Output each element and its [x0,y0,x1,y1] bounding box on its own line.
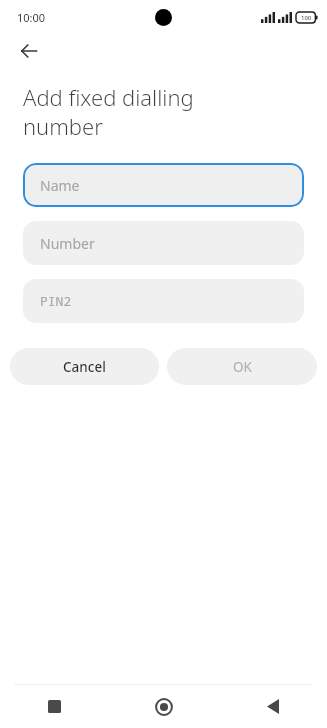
staticText: 100 [301,14,312,22]
button[interactable]: Recent apps [0,685,109,728]
button[interactable]: Back [12,34,46,68]
staticText: 10:00 [17,10,46,25]
staticText: Add fixed dialling number [23,82,257,141]
staticText: OK [233,358,252,376]
staticText: Name [40,176,80,195]
button[interactable]: Number [23,221,304,265]
staticText: Cancel [63,358,106,376]
button[interactable]: Home [109,685,218,728]
button[interactable]: Cancel [10,348,159,385]
button[interactable]: PIN2 [23,279,304,323]
staticText: PIN2 [40,292,72,310]
button[interactable]: Name [23,163,304,207]
staticText: Number [40,234,95,253]
button[interactable]: Back [218,685,327,728]
button[interactable]: OK [167,348,317,385]
